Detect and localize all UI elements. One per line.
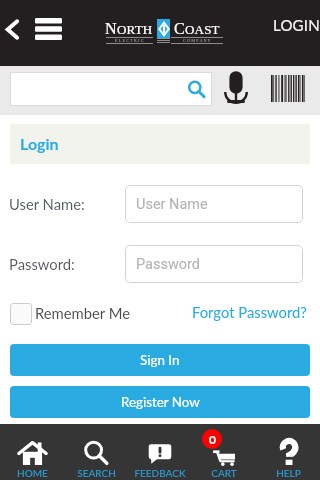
staticText: User Name — [136, 196, 208, 213]
button[interactable]: Search — [10, 72, 212, 106]
staticText: HELP — [276, 467, 301, 479]
staticText: Password — [136, 256, 201, 273]
button[interactable]: Register Now — [10, 386, 310, 418]
staticText: Forgot Password? — [192, 303, 307, 321]
staticText: FEEDBACK — [134, 467, 186, 479]
button[interactable]: HELP — [256, 424, 320, 480]
button[interactable]: Remember Me — [10, 303, 131, 325]
button[interactable]: Back — [0, 16, 24, 43]
staticText: Sign In — [140, 352, 180, 368]
button[interactable]: Scan barcode — [265, 71, 311, 106]
staticText: HOME — [17, 467, 48, 479]
staticText: OAST — [185, 22, 220, 36]
staticText: User Name: — [9, 195, 85, 213]
button[interactable]: Login — [10, 124, 310, 164]
staticText: SEARCH — [77, 467, 116, 479]
button[interactable]: Forgot Password? — [192, 305, 307, 323]
staticText: N — [105, 20, 117, 36]
staticText: 0 — [209, 432, 216, 446]
staticText: ORTH — [117, 22, 153, 36]
button[interactable]: FEEDBACK — [128, 424, 192, 480]
button[interactable]: HOME — [0, 424, 64, 480]
button[interactable]: LOGIN — [272, 12, 320, 38]
button[interactable]: SEARCH — [64, 424, 128, 480]
button[interactable]: Password — [125, 245, 303, 283]
button[interactable]: CART — [192, 424, 256, 480]
staticText: CART — [211, 467, 237, 479]
staticText: Remember Me — [35, 304, 131, 322]
staticText: LOGIN — [273, 16, 320, 34]
staticText: C — [174, 20, 185, 36]
staticText: C O M P A N Y — [183, 38, 211, 43]
button[interactable]: Menu — [30, 13, 67, 45]
button[interactable]: Sign In — [10, 344, 310, 376]
staticText: Register Now — [121, 394, 200, 410]
button[interactable]: User Name — [125, 185, 303, 223]
staticText: Login — [20, 134, 59, 153]
staticText: E L E C T R I C — [115, 38, 144, 43]
button[interactable]: Voice search — [219, 67, 253, 107]
staticText: Password: — [9, 255, 75, 273]
